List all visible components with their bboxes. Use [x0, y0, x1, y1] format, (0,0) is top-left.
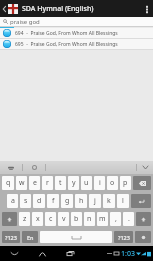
button[interactable]: h — [75, 194, 87, 208]
button[interactable]: Voice input — [135, 231, 151, 243]
staticText: p — [123, 178, 128, 188]
staticText: ?123 — [5, 234, 17, 241]
staticText: o — [110, 178, 115, 188]
button[interactable]: v — [58, 212, 69, 226]
button[interactable]: c — [45, 212, 56, 226]
button[interactable]: Enter — [131, 194, 151, 208]
button[interactable]: p — [120, 176, 131, 190]
button[interactable]: Voice input — [0, 161, 22, 174]
button[interactable]: En — [22, 231, 38, 243]
button[interactable]: Shift — [136, 212, 151, 226]
button[interactable]: z — [19, 212, 30, 226]
staticText: t — [59, 178, 62, 188]
button[interactable]: l — [117, 194, 129, 208]
button[interactable]: f — [47, 194, 59, 208]
staticText: 695 - Praise God, From Whom All Blessing… — [15, 41, 118, 48]
staticText: , — [115, 214, 117, 224]
button[interactable]: Recent apps — [56, 246, 84, 261]
button[interactable]: o — [107, 176, 118, 190]
button[interactable]: w — [16, 176, 27, 190]
staticText: x — [36, 214, 40, 224]
button[interactable]: r — [42, 176, 53, 190]
staticText: praise god — [10, 18, 40, 26]
staticText: w — [19, 178, 25, 188]
button[interactable]: Shift — [2, 212, 17, 226]
button[interactable]: k — [103, 194, 115, 208]
button[interactable]: Back — [0, 246, 28, 261]
button[interactable]: i — [94, 176, 105, 190]
button[interactable]: ?123 — [114, 231, 133, 243]
button[interactable]: More options — [140, 0, 153, 17]
staticText: En — [27, 234, 34, 241]
staticText: . — [128, 214, 130, 224]
button[interactable] — [40, 231, 112, 243]
staticText: 1:03 — [121, 249, 135, 259]
staticText: e — [33, 178, 37, 188]
button[interactable]: a — [7, 194, 18, 208]
staticText: a — [11, 196, 15, 206]
button[interactable]: praise god — [0, 17, 153, 27]
button[interactable]: y — [68, 176, 79, 190]
staticText: y — [72, 178, 76, 188]
button[interactable]: q — [2, 176, 14, 190]
button[interactable]: m — [97, 212, 108, 226]
button[interactable]: ?123 — [2, 231, 20, 243]
button[interactable]: g — [61, 194, 73, 208]
button[interactable]: 694 - Praise God, From Whom All Blessing… — [0, 28, 153, 38]
staticText: r — [46, 178, 49, 188]
button[interactable]: t — [55, 176, 66, 190]
staticText: d — [37, 196, 42, 206]
staticText: b — [74, 214, 79, 224]
button[interactable]: e — [29, 176, 40, 190]
staticText: s — [24, 196, 28, 206]
button[interactable]: Home — [28, 246, 56, 261]
button[interactable]: s — [20, 194, 31, 208]
staticText: h — [79, 196, 84, 206]
button[interactable]: x — [32, 212, 43, 226]
staticText: g — [65, 196, 70, 206]
staticText: v — [62, 214, 66, 224]
button[interactable]: 695 - Praise God, From Whom All Blessing… — [0, 39, 153, 49]
staticText: ?123 — [118, 234, 130, 241]
staticText: 694 - Praise God, From Whom All Blessing… — [15, 30, 118, 37]
staticText: u — [84, 178, 89, 188]
staticText: q — [6, 178, 11, 188]
button[interactable]: b — [71, 212, 82, 226]
button[interactable]: , — [110, 212, 121, 226]
staticText: l — [122, 196, 124, 206]
button[interactable]: d — [33, 194, 45, 208]
button[interactable]: Emoji — [23, 161, 45, 174]
staticText: k — [107, 196, 111, 206]
staticText: f — [52, 196, 55, 206]
button[interactable]: n — [84, 212, 95, 226]
button[interactable]: Navigate up — [0, 0, 20, 17]
staticText: c — [49, 214, 53, 224]
staticText: j — [94, 196, 96, 206]
button[interactable]: . — [123, 212, 134, 226]
staticText: z — [23, 214, 27, 224]
staticText: m — [99, 214, 106, 224]
staticText: i — [99, 178, 101, 188]
button[interactable]: j — [89, 194, 101, 208]
button[interactable]: Hide suggestions — [137, 161, 153, 174]
button[interactable]: Delete — [133, 176, 151, 190]
button[interactable]: u — [81, 176, 92, 190]
staticText: SDA Hymnal (English) — [22, 4, 140, 14]
staticText: n — [87, 214, 92, 224]
